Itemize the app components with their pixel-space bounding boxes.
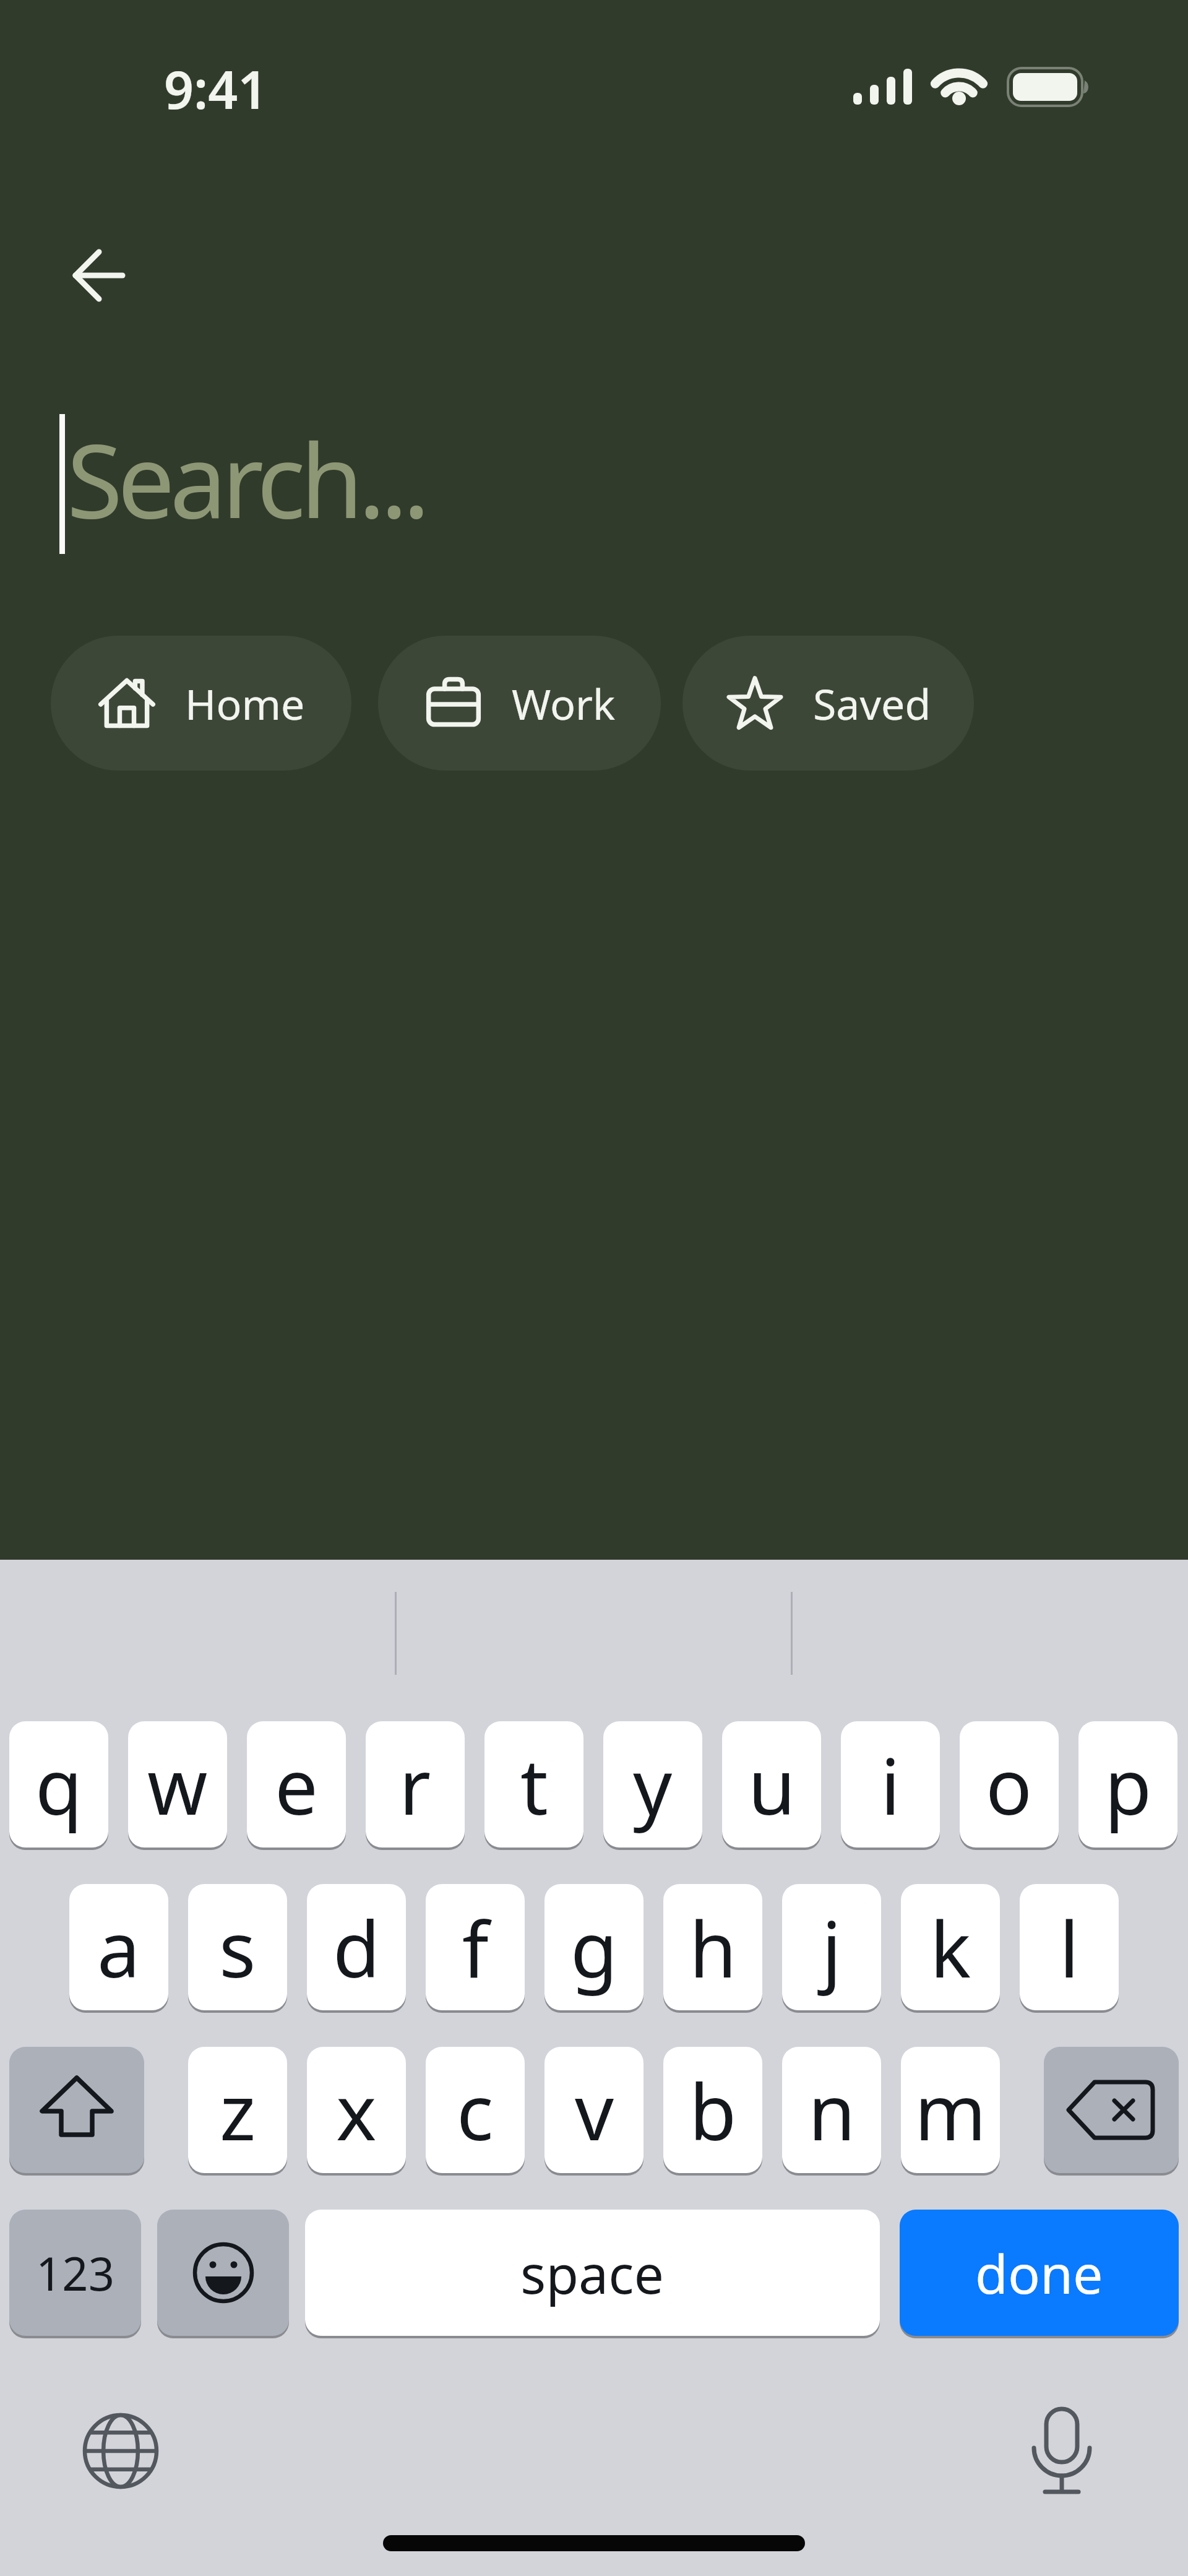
button[interactable] [82,2413,159,2489]
staticText: done [975,2237,1103,2309]
button[interactable] [157,2210,289,2336]
button[interactable]: j [782,1884,881,2010]
button[interactable]: o [960,1721,1059,1848]
button[interactable] [62,241,136,309]
staticText: y [633,1732,673,1837]
staticText: u [748,1732,796,1837]
button[interactable]: m [901,2047,1000,2173]
staticText: Home [185,675,305,732]
button[interactable]: d [307,1884,406,2010]
staticText: 123 [36,2242,114,2304]
button[interactable]: n [782,2047,881,2173]
staticText: f [462,1895,489,2000]
staticText: l [1059,1895,1079,2000]
button[interactable]: x [307,2047,406,2173]
staticText: k [930,1895,971,2000]
button[interactable]: u [722,1721,821,1848]
button[interactable]: v [544,2047,643,2173]
staticText: w [147,1732,208,1837]
button[interactable] [9,2047,144,2173]
button[interactable]: space [305,2210,880,2336]
button[interactable]: f [426,1884,525,2010]
staticText: r [399,1732,431,1837]
button[interactable]: h [663,1884,762,2010]
staticText: d [333,1895,381,2000]
button[interactable]: b [663,2047,762,2173]
button[interactable]: c [426,2047,525,2173]
button[interactable]: t [484,1721,583,1848]
staticText: q [35,1732,83,1837]
button[interactable]: l [1020,1884,1119,2010]
staticText: b [689,2058,737,2163]
button[interactable]: Work [378,636,661,771]
button[interactable]: 123 [9,2210,141,2336]
staticText: Work [512,675,616,732]
staticText: z [220,2058,256,2163]
button[interactable]: r [366,1721,465,1848]
button[interactable]: Home [51,636,351,771]
staticText: 9:41 [164,53,268,124]
button[interactable]: i [841,1721,940,1848]
button[interactable]: y [603,1721,702,1848]
button[interactable]: w [128,1721,227,1848]
button[interactable] [1030,2409,1094,2498]
staticText: t [520,1732,548,1837]
staticText: n [808,2058,856,2163]
staticText: o [986,1732,1033,1837]
staticText: v [575,2058,614,2163]
button[interactable] [1044,2047,1179,2173]
button[interactable]: p [1078,1721,1177,1848]
button[interactable]: q [9,1721,108,1848]
staticText: Saved [813,675,931,732]
staticText: i [880,1732,900,1837]
staticText: Search... [67,410,425,548]
button[interactable]: e [247,1721,346,1848]
staticText: space [520,2237,665,2309]
button[interactable]: a [69,1884,168,2010]
staticText: h [689,1895,737,2000]
staticText: p [1104,1732,1152,1837]
staticText: g [570,1895,618,2000]
staticText: x [336,2058,377,2163]
staticText: c [457,2058,494,2163]
button[interactable]: done [900,2210,1179,2336]
button[interactable]: s [188,1884,287,2010]
staticText: j [822,1895,841,2000]
staticText: a [97,1895,140,2000]
staticText: s [219,1895,256,2000]
staticText: m [915,2058,986,2163]
button[interactable]: Saved [682,636,974,771]
button[interactable]: k [901,1884,1000,2010]
button[interactable]: g [544,1884,643,2010]
button[interactable]: z [188,2047,287,2173]
staticText: e [275,1732,318,1837]
